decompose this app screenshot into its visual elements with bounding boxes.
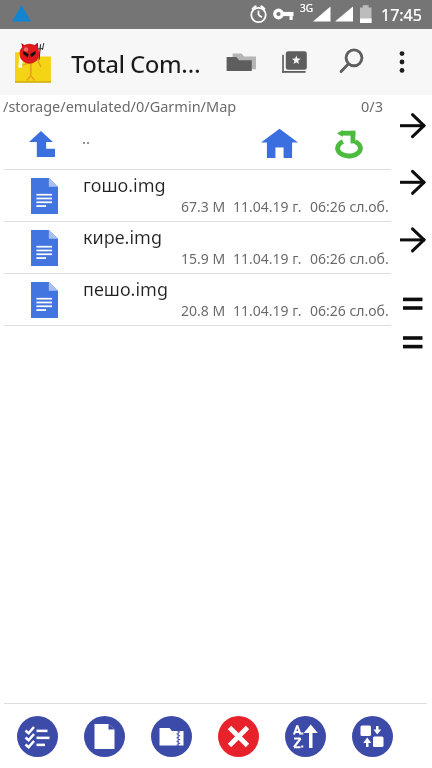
button[interactable]: кире.img: [0, 222, 432, 274]
button[interactable]: Folders: [219, 40, 263, 84]
staticText: 06:26 сл.об.: [310, 249, 389, 268]
button[interactable]: Search: [329, 40, 373, 84]
staticText: 20.8 M: [181, 301, 226, 320]
button[interactable]: More options: [380, 40, 424, 84]
staticText: /storage/emulated/0/Garmin/Map: [3, 96, 237, 116]
staticText: 11.04.19 г.: [233, 249, 302, 268]
staticText: 67.3 M: [181, 197, 226, 216]
button[interactable]: Select all: [17, 716, 58, 757]
staticText: 11.04.19 г.: [233, 197, 302, 216]
staticText: 15.9 M: [181, 249, 226, 268]
staticText: Total Com…: [71, 47, 201, 80]
staticText: ..: [82, 128, 91, 148]
button[interactable]: New file: [84, 716, 125, 757]
button[interactable]: Bookmarks: [274, 40, 318, 84]
button[interactable]: Cancel: [218, 716, 259, 757]
staticText: 17:45: [381, 4, 422, 26]
button[interactable]: Total Commander: [8, 35, 58, 85]
button[interactable]: Compress: [151, 716, 192, 757]
staticText: 06:26 сл.об.: [310, 197, 389, 216]
staticText: 11.04.19 г.: [233, 301, 302, 320]
staticText: 0/3: [361, 96, 383, 116]
staticText: гошо.img: [83, 173, 166, 198]
staticText: кире.img: [83, 225, 162, 250]
button[interactable]: Refresh: [329, 124, 369, 164]
staticText: 06:26 сл.об.: [310, 301, 389, 320]
staticText: 3G: [300, 1, 313, 15]
button[interactable]: Up one level: [22, 124, 62, 164]
button[interactable]: гошо.img: [0, 170, 432, 222]
button[interactable]: Exchange panels: [352, 716, 393, 757]
staticText: пешо.img: [83, 277, 168, 302]
button[interactable]: пешо.img: [0, 274, 432, 326]
button[interactable]: Home: [258, 122, 300, 164]
button[interactable]: Sort: [285, 716, 326, 757]
